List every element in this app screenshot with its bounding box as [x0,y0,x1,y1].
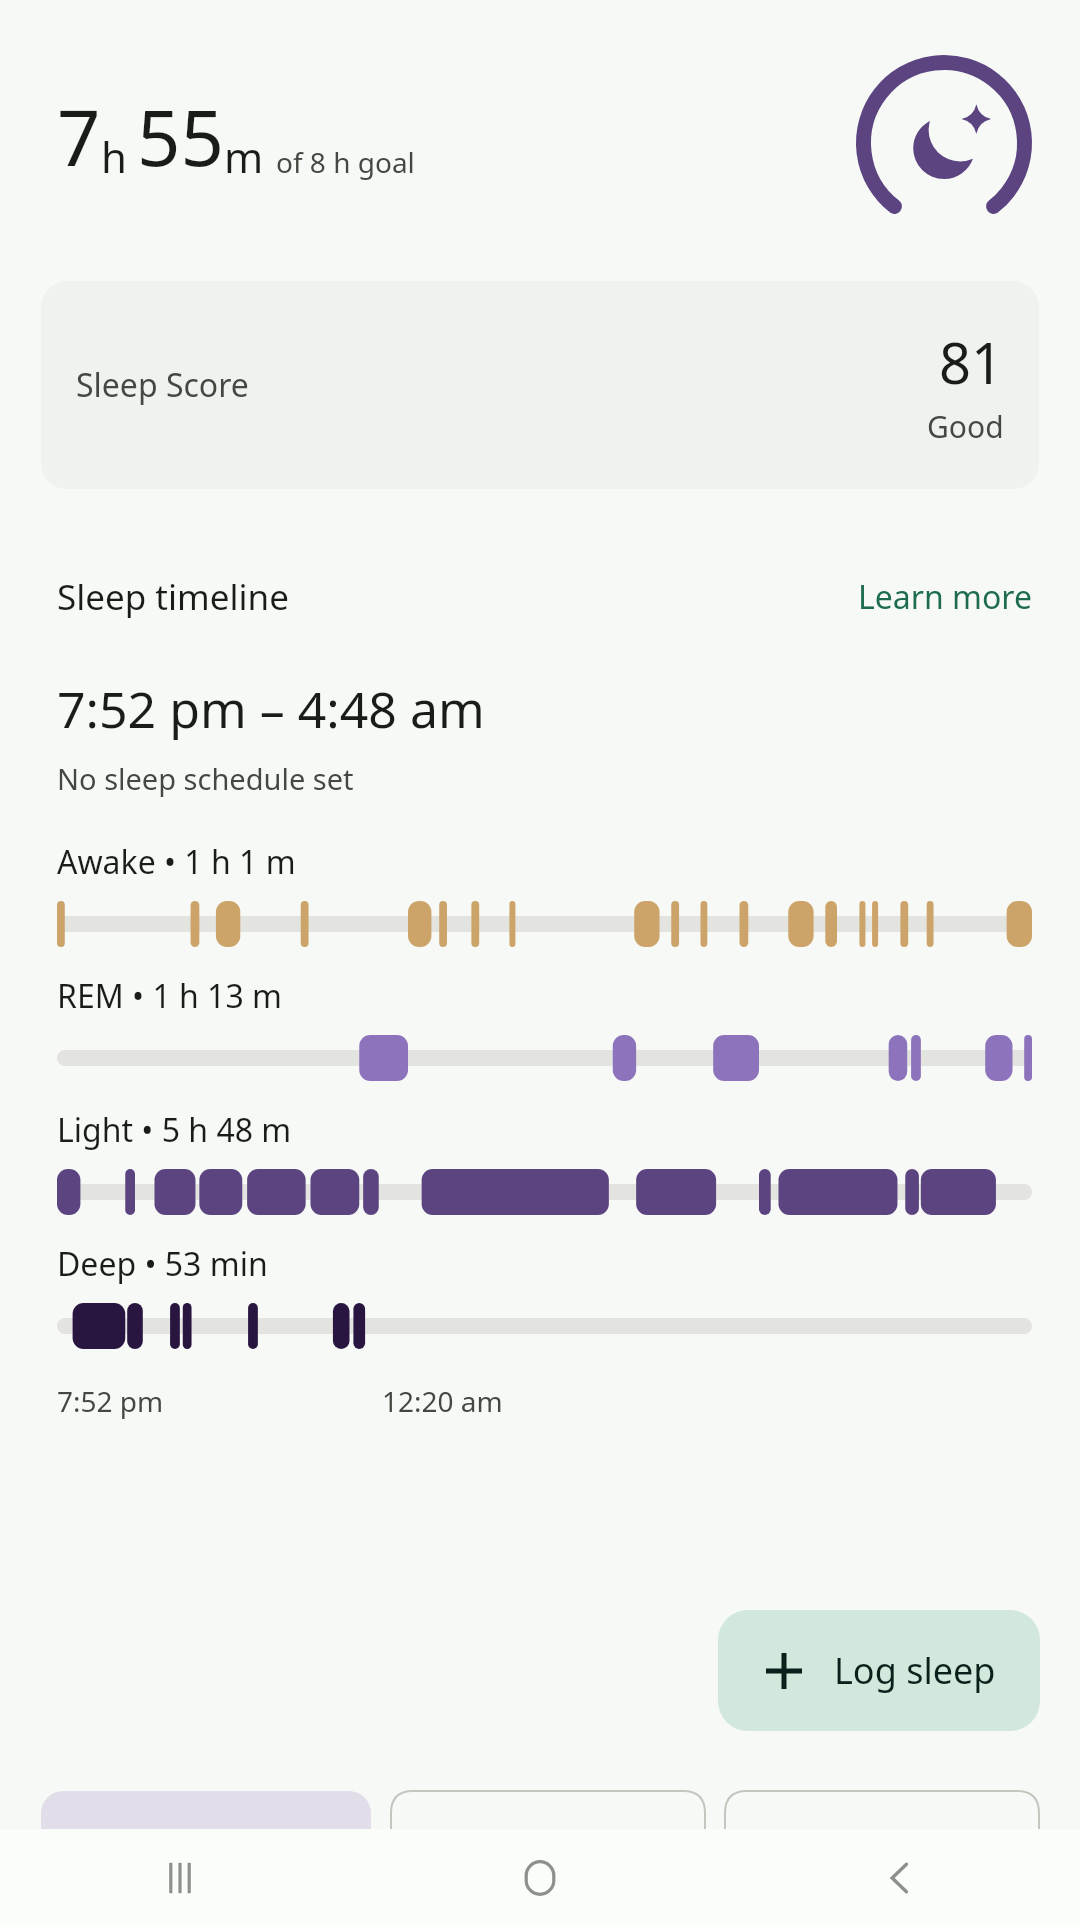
staticText: Awake • 1 h 1 m [57,840,296,884]
staticText: of 8 h goal [276,143,415,181]
staticText: Log sleep [834,1646,996,1695]
button[interactable]: Back [720,1829,1080,1927]
button[interactable] [725,1791,1039,1829]
staticText: Light • 5 h 48 m [57,1108,292,1152]
staticText: 7:52 pm [57,1382,164,1420]
button[interactable]: Sleep Score [41,281,1039,489]
staticText: 81 [939,324,1004,400]
staticText: 7:52 pm – 4:48 am [57,675,485,743]
button[interactable]: Learn more [854,571,1036,623]
button[interactable] [391,1791,705,1829]
button[interactable]: Recents [0,1829,360,1927]
staticText: 55 [137,85,224,189]
staticText: m [224,128,264,185]
button[interactable]: Sleep goal ring [856,55,1032,231]
staticText: Sleep Score [76,363,249,407]
staticText: REM • 1 h 13 m [57,974,282,1018]
button[interactable]: Log sleep [718,1610,1040,1731]
staticText: 12:20 am [382,1382,503,1420]
staticText: No sleep schedule set [57,759,354,798]
button[interactable]: Home [360,1829,720,1927]
staticText: Learn more [858,575,1032,619]
staticText: Good [927,406,1004,447]
staticText: 7 [57,85,101,189]
staticText: Sleep timeline [57,573,289,621]
staticText: Deep • 53 min [57,1242,268,1286]
button[interactable] [41,1791,371,1829]
staticText: h [101,128,127,185]
